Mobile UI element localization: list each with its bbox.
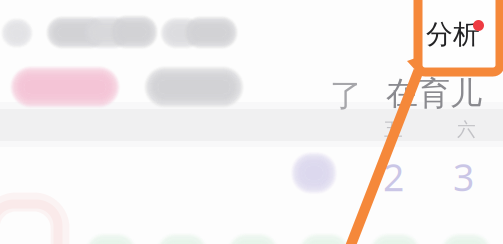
staticText: 在育儿 [386, 74, 482, 113]
staticText: 五 [384, 118, 403, 141]
button[interactable]: 分析 [418, 0, 500, 72]
staticText: 六 [457, 118, 476, 141]
staticText: 了 [330, 76, 362, 115]
staticText: 3 [453, 152, 474, 202]
staticText: 分析 [426, 18, 480, 51]
staticText: 2 [383, 152, 404, 202]
